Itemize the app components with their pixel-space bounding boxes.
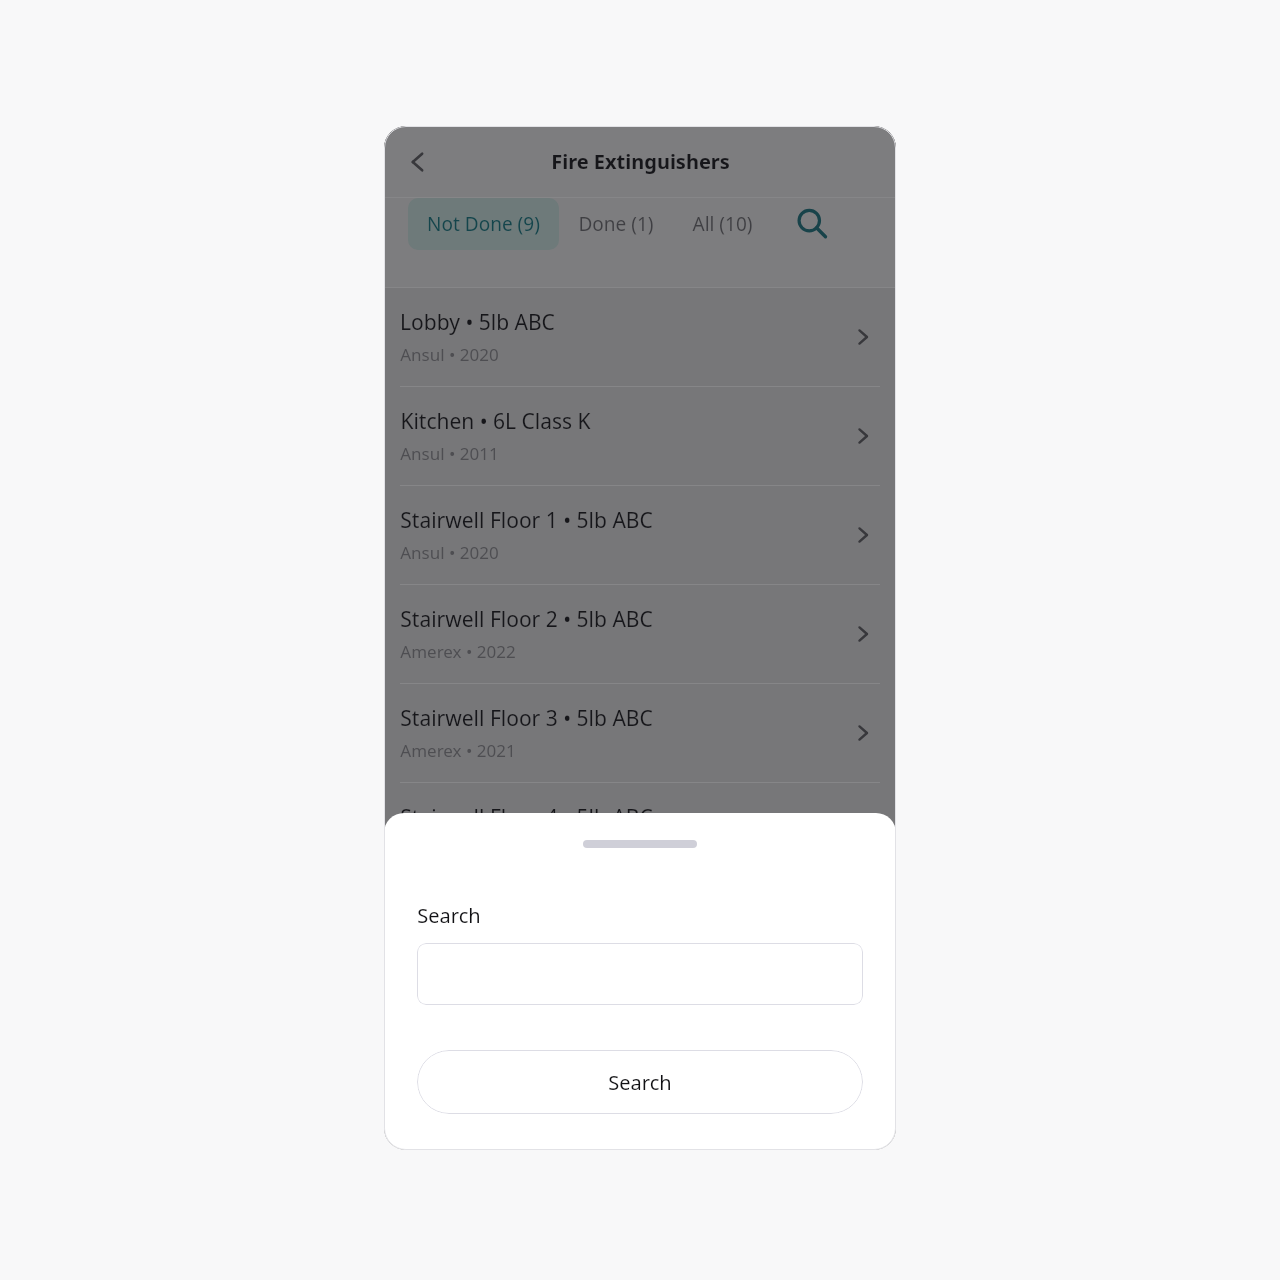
button[interactable]: Not Done (9) bbox=[408, 198, 559, 250]
staticText: All (10) bbox=[692, 211, 753, 237]
staticText: Stairwell Floor 2 • 5lb ABC bbox=[400, 605, 653, 634]
button[interactable]: Back bbox=[390, 134, 446, 190]
button[interactable]: Kitchen • 6L Class K bbox=[384, 387, 896, 485]
button[interactable]: Stairwell Floor 3 • 5lb ABC bbox=[384, 684, 896, 782]
button[interactable]: Done (1) bbox=[559, 198, 673, 250]
staticText: Not Done (9) bbox=[427, 211, 540, 237]
button[interactable]: Lobby • 5lb ABC bbox=[384, 288, 896, 386]
button[interactable]: All (10) bbox=[673, 198, 772, 250]
staticText: Stairwell Floor 3 • 5lb ABC bbox=[400, 704, 653, 733]
staticText: Amerex • 2022 bbox=[400, 640, 516, 663]
button[interactable]: Stairwell Floor 2 • 5lb ABC bbox=[384, 585, 896, 683]
button[interactable]: Stairwell Floor 4 • 5lb ABC bbox=[384, 783, 896, 881]
staticText: Search bbox=[417, 902, 481, 929]
staticText: Search bbox=[608, 1069, 672, 1096]
button[interactable]: Search bbox=[417, 1050, 863, 1114]
staticText: Ansul • 2020 bbox=[400, 343, 499, 366]
button[interactable]: Search bbox=[786, 198, 838, 250]
staticText: Lobby • 5lb ABC bbox=[400, 308, 555, 337]
staticText: Stairwell Floor 4 • 5lb ABC bbox=[400, 803, 653, 832]
button[interactable] bbox=[417, 943, 863, 1005]
button[interactable]: Stairwell Floor 1 • 5lb ABC bbox=[384, 486, 896, 584]
button[interactable]: Stairwell Floor 5 • 5lb ABC bbox=[384, 882, 896, 980]
staticText: Done (1) bbox=[578, 211, 654, 237]
staticText: Fire Extinguishers bbox=[551, 148, 730, 175]
staticText: Amerex • 2021 bbox=[400, 739, 516, 762]
staticText: Amerex • 2021 bbox=[400, 937, 516, 960]
staticText: Stairwell Floor 5 • 5lb ABC bbox=[400, 902, 653, 931]
staticText: Ansul • 2011 bbox=[400, 442, 499, 465]
staticText: Ansul • 2020 bbox=[400, 541, 499, 564]
staticText: Kitchen • 6L Class K bbox=[400, 407, 591, 436]
staticText: Stairwell Floor 1 • 5lb ABC bbox=[400, 506, 653, 535]
